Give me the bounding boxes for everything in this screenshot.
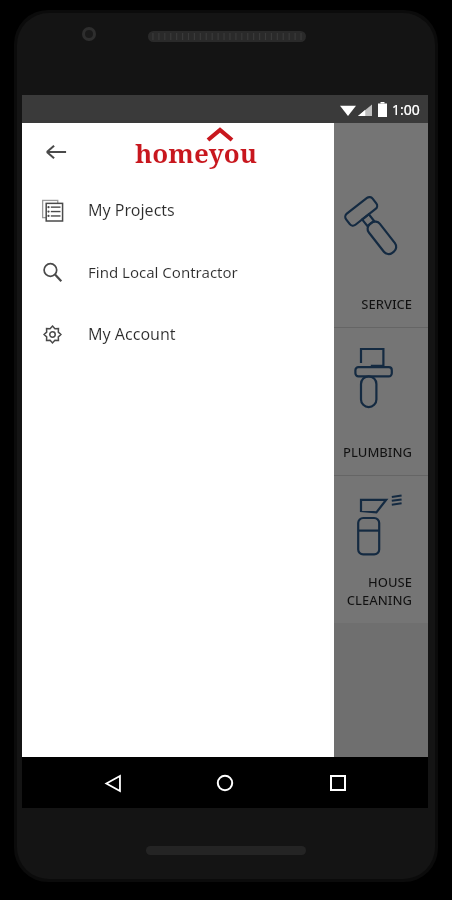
staticText: 1:00 — [392, 100, 420, 119]
staticText: My Account — [88, 323, 176, 345]
button[interactable]: Home — [203, 761, 247, 805]
staticText: My Projects — [88, 199, 175, 221]
button[interactable]: My Projects — [22, 188, 334, 232]
staticText: Find Local Contractor — [88, 262, 238, 282]
button[interactable]: Find Local Contractor — [22, 250, 334, 294]
button[interactable]: PLUMBING — [22, 328, 428, 475]
button[interactable]: HOUSE CLEANING — [22, 476, 428, 623]
button[interactable]: Back — [32, 128, 80, 176]
staticText: PLUMBING — [343, 443, 412, 461]
staticText: homeyou — [135, 135, 258, 170]
staticText: HOUSE CLEANING — [346, 573, 412, 609]
staticText: homeyou — [182, 134, 305, 169]
button[interactable]: SERVICE — [22, 180, 428, 327]
staticText: SERVICE — [361, 295, 412, 313]
button[interactable]: My Account — [22, 312, 334, 356]
button[interactable]: Back — [91, 761, 135, 805]
button[interactable]: Recents — [316, 761, 360, 805]
